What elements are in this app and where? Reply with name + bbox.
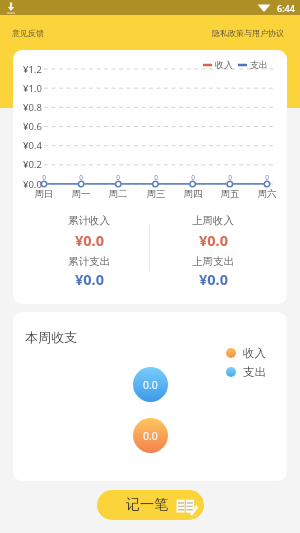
staticText: 周六 — [252, 188, 282, 200]
staticText: ¥1.2 — [23, 63, 42, 76]
staticText: ¥0.0 — [75, 230, 104, 250]
staticText: 收入 — [243, 346, 266, 360]
staticText: 周日 — [29, 188, 59, 200]
staticText: 0 — [74, 173, 88, 182]
staticText: 支出 — [243, 365, 266, 379]
staticText: 本周收支 — [25, 329, 77, 345]
staticText: 周三 — [141, 188, 171, 200]
button[interactable]: 隐私政策与用户协议 — [208, 23, 288, 43]
staticText: 隐私政策与用户协议 — [212, 28, 284, 38]
staticText: 0 — [223, 173, 237, 182]
button[interactable]: 记一笔 — [97, 490, 204, 520]
staticText: 0.0 — [143, 429, 158, 443]
staticText: 支出 — [250, 59, 268, 70]
staticText: 周一 — [66, 188, 96, 200]
staticText: 0 — [260, 173, 274, 182]
staticText: ¥1.0 — [23, 82, 42, 95]
staticText: ¥0.6 — [23, 120, 42, 133]
staticText: 收入 — [215, 59, 233, 70]
staticText: 0 — [186, 173, 200, 182]
staticText: ¥0.0 — [199, 269, 228, 289]
staticText: ¥0.0 — [199, 230, 228, 250]
staticText: 上周支出 — [192, 255, 234, 268]
staticText: 记一笔 — [126, 496, 168, 514]
staticText: ¥0.0 — [23, 178, 42, 191]
staticText: 6:44 — [277, 2, 295, 14]
staticText: 累计收入 — [68, 214, 110, 227]
staticText: ¥0.8 — [23, 101, 42, 114]
staticText: 累计支出 — [68, 255, 110, 268]
staticText: 0.0 — [143, 378, 158, 392]
staticText: 意见反馈 — [12, 28, 44, 38]
staticText: 0 — [149, 173, 163, 182]
staticText: 上周收入 — [192, 214, 234, 227]
staticText: 周四 — [178, 188, 208, 200]
staticText: 0 — [37, 173, 51, 182]
staticText: ¥0.4 — [23, 139, 42, 152]
staticText: 0 — [111, 173, 125, 182]
staticText: 周五 — [215, 188, 245, 200]
staticText: ¥0.2 — [23, 158, 42, 171]
staticText: ¥0.0 — [75, 269, 104, 289]
button[interactable]: 意见反馈 — [8, 23, 48, 43]
staticText: 周二 — [103, 188, 133, 200]
